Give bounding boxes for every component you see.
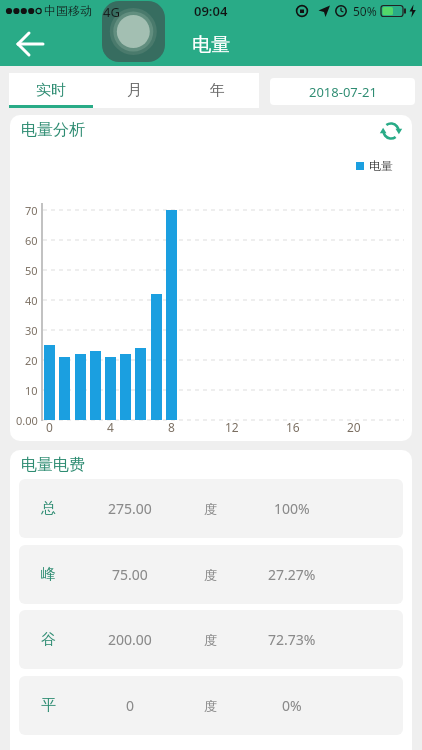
staticText: 60 (25, 233, 38, 248)
staticText: 度 (204, 632, 217, 648)
staticText: 总 (41, 499, 56, 518)
staticText: 0 (46, 419, 53, 435)
button[interactable]: 实时 (9, 73, 93, 108)
staticText: 8 (168, 419, 175, 435)
staticText: 75.00 (112, 565, 148, 584)
staticText: 50% (353, 3, 377, 19)
staticText: 0.00 (16, 413, 38, 428)
staticText: 72.73% (268, 630, 316, 649)
staticText: 4 (107, 419, 114, 435)
button[interactable] (8, 28, 52, 60)
staticText: 度 (204, 567, 217, 583)
button[interactable]: 平 (19, 676, 403, 735)
staticText: 度 (204, 698, 217, 714)
staticText: 电量分析 (21, 120, 85, 140)
staticText: 200.00 (108, 630, 152, 649)
staticText: 4G (103, 3, 120, 21)
staticText: 09:04 (194, 2, 228, 20)
staticText: 0 (126, 696, 135, 715)
staticText: 平 (41, 696, 56, 715)
staticText: 实时 (36, 81, 66, 100)
staticText: 10 (25, 383, 38, 398)
button[interactable] (102, 1, 165, 62)
button[interactable]: 月 (93, 73, 176, 108)
staticText: 20 (347, 419, 361, 435)
staticText: 月 (127, 81, 142, 100)
staticText: 50 (25, 263, 38, 278)
staticText: 20 (25, 353, 38, 368)
staticText: 2018-07-21 (309, 83, 377, 101)
staticText: 100% (274, 499, 310, 518)
staticText: 中国移动 (44, 3, 92, 18)
button[interactable]: 年 (176, 73, 259, 108)
staticText: 0% (282, 696, 302, 715)
staticText: 峰 (41, 565, 56, 584)
staticText: 谷 (41, 630, 56, 649)
staticText: 70 (25, 203, 38, 218)
staticText: 度 (204, 501, 217, 517)
staticText: 275.00 (108, 499, 152, 518)
staticText: 电量电费 (21, 455, 85, 475)
staticText: 30 (25, 323, 38, 338)
button[interactable]: 总 (19, 479, 403, 538)
staticText: 27.27% (268, 565, 316, 584)
staticText: 电量 (192, 33, 230, 57)
button[interactable]: 峰 (19, 545, 403, 604)
button[interactable]: 2018-07-21 (270, 78, 415, 105)
button[interactable]: 谷 (19, 610, 403, 669)
staticText: 12 (225, 419, 239, 435)
staticText: 年 (210, 81, 225, 100)
staticText: 电量 (369, 158, 393, 173)
button[interactable] (375, 115, 411, 147)
staticText: 40 (25, 293, 38, 308)
staticText: 16 (286, 419, 300, 435)
